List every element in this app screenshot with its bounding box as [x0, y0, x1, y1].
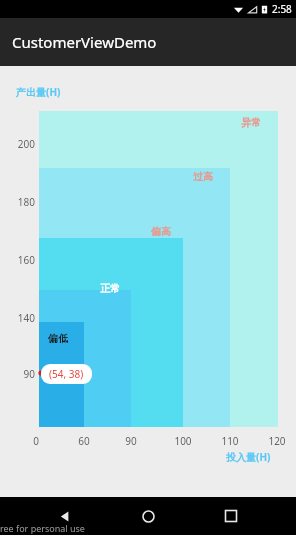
staticText: 160 [0, 253, 35, 267]
staticText: 90 [0, 367, 35, 381]
staticText: 90 [116, 434, 146, 448]
staticText: ree for personal use [0, 522, 85, 534]
staticText: 180 [0, 195, 35, 209]
staticText: (54, 38) [49, 367, 84, 381]
staticText: 过高 [193, 170, 213, 183]
staticText: 异常 [241, 116, 261, 129]
staticText: 200 [0, 137, 35, 151]
staticText: 0 [21, 434, 51, 448]
staticText: 110 [215, 434, 245, 448]
staticText: 正常 [100, 282, 120, 295]
button[interactable]: Recent apps [213, 498, 249, 534]
staticText: 产出量(H) [16, 85, 61, 99]
button[interactable]: Home [130, 498, 166, 534]
staticText: 140 [0, 311, 35, 325]
button[interactable]: Back [47, 498, 83, 534]
staticText: 投入量(H) [226, 450, 271, 464]
staticText: 偏高 [151, 225, 171, 238]
staticText: 60 [69, 434, 99, 448]
button[interactable]: (54, 38) [41, 364, 92, 384]
staticText: 偏低 [48, 332, 68, 345]
staticText: 120 [262, 434, 292, 448]
button[interactable]: CustomerViewDemo [0, 18, 296, 66]
staticText: 100 [168, 434, 198, 448]
staticText: CustomerViewDemo [12, 32, 157, 52]
staticText: 2:58 [272, 2, 292, 16]
